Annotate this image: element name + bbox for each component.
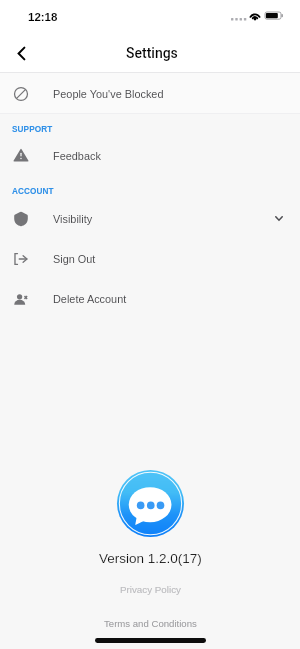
staticText: Visibility	[53, 213, 93, 225]
staticText: People You've Blocked	[53, 88, 164, 100]
staticText: Privacy Policy	[120, 584, 181, 595]
staticText: 12:18	[28, 11, 58, 24]
button[interactable]: Delete Account	[0, 278, 300, 319]
button[interactable]: Privacy Policy	[112, 581, 189, 598]
staticText: ACCOUNT	[12, 187, 54, 196]
button[interactable]: Back	[0, 34, 42, 72]
button[interactable]: Sign Out	[0, 238, 300, 279]
staticText: Delete Account	[53, 293, 127, 305]
button[interactable]: Visibility	[0, 198, 300, 239]
staticText: Version 1.2.0(17)	[99, 551, 202, 566]
button[interactable]: Terms and Conditions	[96, 615, 205, 632]
button[interactable]: People You've Blocked	[0, 73, 300, 114]
staticText: SUPPORT	[12, 125, 53, 134]
staticText: Sign Out	[53, 253, 96, 265]
staticText: Settings	[126, 45, 178, 61]
button[interactable]: Feedback	[0, 135, 300, 176]
staticText: Feedback	[53, 150, 101, 162]
staticText: Terms and Conditions	[104, 618, 197, 629]
